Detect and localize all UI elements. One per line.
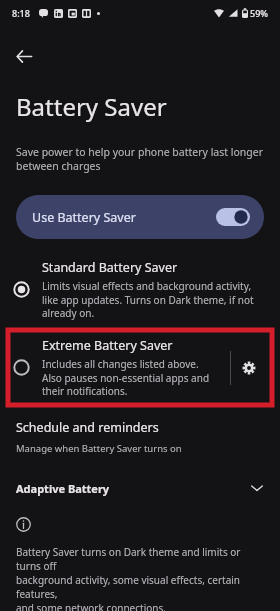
button[interactable]: Adaptive Battery xyxy=(0,471,280,505)
staticText: 59% xyxy=(250,7,268,19)
button[interactable]: Use Battery Saver xyxy=(16,195,264,239)
staticText: Adaptive Battery xyxy=(16,481,110,496)
staticText: Use Battery Saver xyxy=(32,209,136,226)
button[interactable]: Extreme Battery Saver xyxy=(8,330,272,405)
button[interactable]: Extreme Battery Saver settings xyxy=(231,350,267,386)
staticText: 8:18 xyxy=(12,7,30,19)
staticText: Schedule and reminders xyxy=(16,419,159,436)
staticText: Standard Battery Saver xyxy=(42,259,178,276)
staticText: Extreme Battery Saver xyxy=(42,337,173,354)
staticText: Save power to help your phone battery la… xyxy=(16,145,264,173)
button[interactable]: Standard Battery Saver xyxy=(0,255,280,324)
staticText: Includes all changes listed above. Also … xyxy=(42,357,210,398)
staticText: Limits visual effects and background act… xyxy=(42,279,254,320)
staticText: Battery Saver xyxy=(16,90,167,123)
staticText: Battery Saver turns on Dark theme and li… xyxy=(16,545,266,611)
button[interactable]: Back xyxy=(8,40,40,72)
staticText: Manage when Battery Saver turns on xyxy=(16,442,182,455)
